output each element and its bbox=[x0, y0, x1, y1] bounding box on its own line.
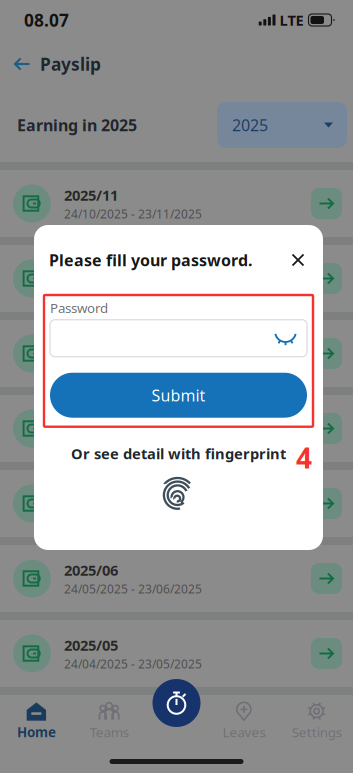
staticText: 2025/05 bbox=[64, 635, 118, 655]
button[interactable]: Submit bbox=[50, 373, 307, 418]
staticText: 08.07 bbox=[24, 8, 69, 31]
staticText: 2025/10 bbox=[64, 260, 118, 280]
button[interactable]: Leaves bbox=[207, 697, 280, 745]
button[interactable]: Teams bbox=[73, 697, 146, 745]
button[interactable]: 2025/10 bbox=[0, 245, 353, 312]
staticText: LTE bbox=[279, 10, 303, 30]
staticText: 2025/08 bbox=[64, 410, 118, 430]
staticText: Payslip bbox=[40, 52, 101, 75]
staticText: Settings bbox=[292, 723, 342, 741]
button[interactable]: Close bbox=[287, 249, 309, 271]
staticText: 24/10/2025 - 23/11/2025 bbox=[64, 206, 202, 222]
staticText: 24/09/2025 - 23/10/2025 bbox=[64, 281, 202, 297]
button[interactable]: 2025/07 bbox=[0, 470, 353, 537]
button[interactable]: Start timer bbox=[152, 679, 200, 727]
staticText: 2025/06 bbox=[64, 560, 118, 580]
button[interactable]: 2025/11 bbox=[0, 170, 353, 237]
staticText: 24/04/2025 - 23/05/2025 bbox=[64, 656, 202, 672]
button[interactable]: 2025/08 bbox=[0, 395, 353, 462]
staticText: Leaves bbox=[222, 723, 265, 741]
staticText: 24/06/2025 - 23/07/2025 bbox=[64, 506, 202, 522]
staticText: Please fill your password. bbox=[49, 249, 252, 271]
staticText: Home bbox=[17, 723, 56, 741]
staticText: Submit bbox=[151, 385, 205, 406]
staticText: 2025 bbox=[232, 114, 268, 136]
staticText: Password bbox=[50, 299, 108, 317]
staticText: 4 bbox=[296, 439, 312, 476]
button[interactable]: Settings bbox=[280, 697, 353, 745]
button[interactable]: Home bbox=[0, 697, 73, 745]
staticText: Or see detail with fingerprint bbox=[71, 444, 286, 463]
button[interactable]: 2025/06 bbox=[0, 545, 353, 612]
button[interactable]: 2025/05 bbox=[0, 620, 353, 687]
staticText: 24/05/2025 - 23/06/2025 bbox=[64, 581, 202, 597]
staticText: Teams bbox=[90, 723, 129, 741]
staticText: Earning in 2025 bbox=[17, 114, 137, 136]
button[interactable]: 2025 bbox=[217, 102, 347, 148]
button[interactable]: 2025/09 bbox=[0, 320, 353, 387]
staticText: 24/08/2025 - 23/09/2025 bbox=[64, 356, 202, 372]
staticText: 2025/11 bbox=[64, 185, 118, 205]
button[interactable]: Back bbox=[8, 47, 36, 81]
